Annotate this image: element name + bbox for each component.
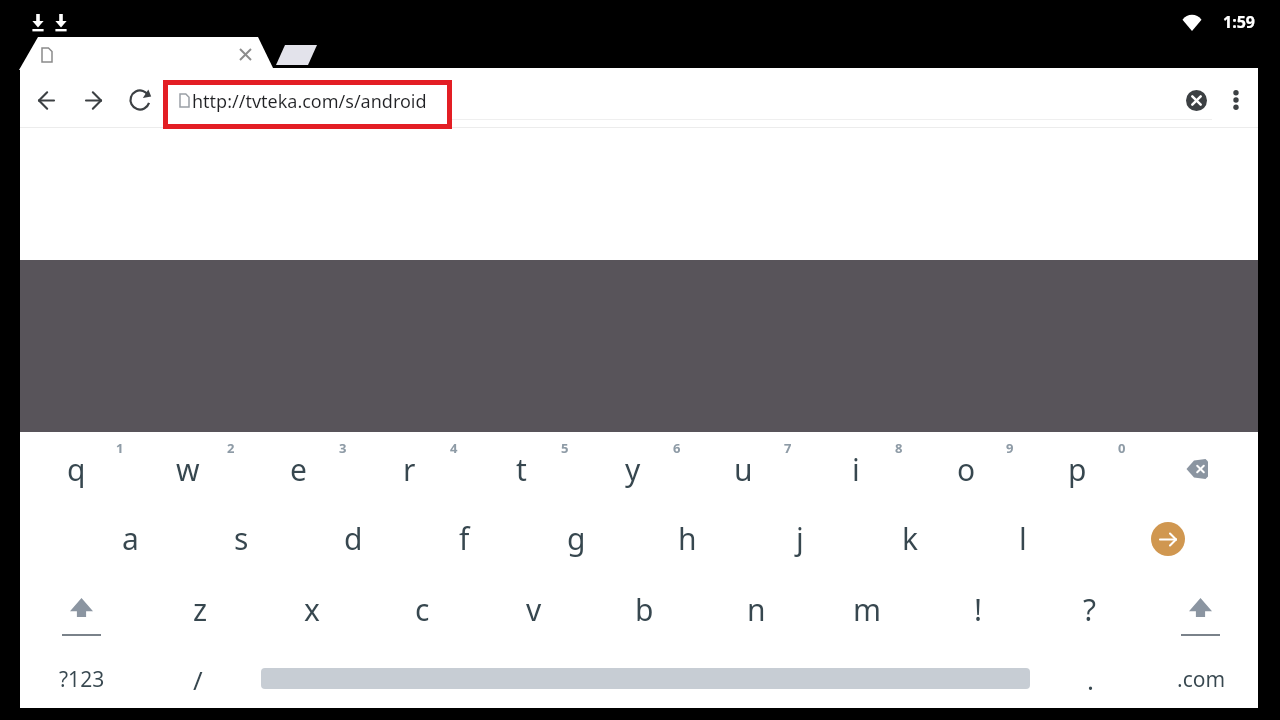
staticText: t <box>516 449 527 490</box>
button[interactable]: a <box>75 505 186 571</box>
staticText: 0 <box>1118 439 1126 457</box>
staticText: l <box>1019 518 1027 559</box>
staticText: c <box>415 589 430 630</box>
button[interactable]: z <box>145 576 256 642</box>
button[interactable]: n <box>701 576 812 642</box>
button[interactable]: http://tvteka.com/s/android <box>168 85 447 124</box>
staticText: d <box>344 518 363 559</box>
button[interactable]: Forward <box>71 78 116 122</box>
button[interactable]: o <box>911 436 1022 502</box>
button[interactable]: i <box>800 436 911 502</box>
staticText: s <box>234 518 249 559</box>
button[interactable]: h <box>632 505 743 571</box>
staticText: a <box>122 518 139 559</box>
staticText: http://tvteka.com/s/android <box>192 89 427 114</box>
staticText: p <box>1068 449 1087 490</box>
button[interactable]: x <box>256 576 367 642</box>
button[interactable]: More options <box>1214 78 1258 122</box>
button[interactable]: r <box>354 436 465 502</box>
staticText: r <box>403 449 416 490</box>
staticText: g <box>567 518 586 559</box>
button[interactable]: k <box>855 505 966 571</box>
staticText: x <box>304 589 320 630</box>
button[interactable]: y <box>577 436 688 502</box>
staticText: f <box>459 518 470 559</box>
button[interactable]: / <box>148 646 248 712</box>
staticText: k <box>902 518 919 559</box>
staticText: 1 <box>116 439 124 457</box>
button[interactable]: .com <box>1151 646 1251 712</box>
button[interactable]: Stop loading <box>1174 78 1218 122</box>
staticText: 3 <box>339 439 347 457</box>
staticText: v <box>526 589 542 630</box>
button[interactable]: t <box>466 436 577 502</box>
button[interactable]: Go <box>1118 506 1218 572</box>
button[interactable]: f <box>409 505 520 571</box>
button[interactable]: w <box>132 436 243 502</box>
staticText: 2 <box>227 439 235 457</box>
button[interactable]: c <box>367 576 478 642</box>
staticText: h <box>678 518 697 559</box>
staticText: .com <box>1177 665 1226 694</box>
staticText: z <box>193 589 208 630</box>
button[interactable]: ? <box>1034 576 1145 642</box>
button[interactable]: p <box>1022 436 1133 502</box>
button[interactable]: u <box>688 436 799 502</box>
button[interactable]: m <box>812 576 923 642</box>
button[interactable]: l <box>967 505 1078 571</box>
staticText: . <box>1087 662 1094 697</box>
button[interactable]: Close tab <box>230 39 260 69</box>
staticText: i <box>852 449 860 490</box>
button[interactable]: Backspace <box>1146 436 1246 502</box>
staticText: 4 <box>450 439 458 457</box>
button[interactable]: q <box>21 436 132 502</box>
staticText: 6 <box>673 439 681 457</box>
staticText: 1:59 <box>1223 11 1255 33</box>
button[interactable]: Shift <box>31 571 131 647</box>
button[interactable]: s <box>186 505 297 571</box>
button[interactable]: d <box>298 505 409 571</box>
staticText: ?123 <box>59 665 105 694</box>
button[interactable]: g <box>521 505 632 571</box>
staticText: m <box>853 589 882 630</box>
staticText: j <box>796 518 804 559</box>
button[interactable]: e <box>243 436 354 502</box>
button[interactable]: ! <box>923 576 1034 642</box>
staticText: 5 <box>561 439 569 457</box>
button[interactable]: b <box>589 576 700 642</box>
staticText: e <box>290 449 307 490</box>
button[interactable]: v <box>478 576 589 642</box>
staticText: 7 <box>784 439 792 457</box>
staticText: b <box>635 589 654 630</box>
staticText: y <box>625 449 641 490</box>
button[interactable]: . <box>1040 646 1140 712</box>
staticText: u <box>734 449 753 490</box>
staticText: ! <box>974 589 983 630</box>
staticText: 9 <box>1006 439 1014 457</box>
button[interactable]: ?123 <box>32 646 132 712</box>
staticText: q <box>67 449 86 490</box>
button[interactable]: Reload <box>117 78 162 122</box>
button[interactable]: Space <box>240 646 1050 712</box>
staticText: o <box>957 449 976 490</box>
staticText: ? <box>1083 589 1097 630</box>
staticText: / <box>193 662 203 697</box>
button[interactable]: Shift <box>1150 571 1250 647</box>
staticText: n <box>747 589 766 630</box>
staticText: w <box>176 449 200 490</box>
staticText: 8 <box>895 439 903 457</box>
button[interactable]: Back <box>24 78 69 122</box>
button[interactable]: j <box>744 505 855 571</box>
